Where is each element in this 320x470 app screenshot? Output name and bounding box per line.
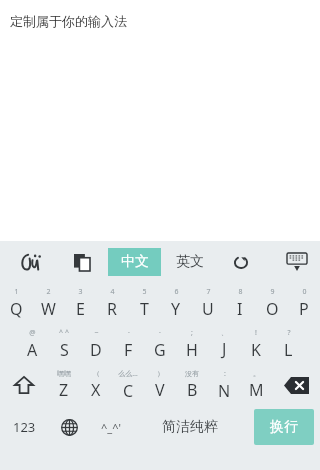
staticText: N — [218, 380, 231, 402]
staticText: 2 — [46, 287, 51, 297]
button[interactable]: Shift — [0, 366, 48, 404]
staticText: Y — [171, 298, 181, 320]
staticText: 换行 — [270, 418, 298, 436]
button[interactable]: 1 — [0, 284, 32, 322]
staticText: 3 — [78, 287, 83, 297]
button[interactable]: Clipboard — [63, 244, 101, 280]
button[interactable]: 。 — [240, 366, 272, 404]
staticText: 123 — [13, 418, 36, 436]
button[interactable]: 英文 — [165, 248, 215, 276]
staticText: G — [154, 339, 166, 361]
button[interactable]: ? — [272, 325, 304, 363]
button[interactable]: 0 — [288, 284, 320, 322]
staticText: V — [155, 379, 165, 401]
staticText: 6 — [174, 287, 179, 297]
button[interactable]: @ — [16, 325, 48, 363]
staticText: @ — [29, 328, 36, 338]
staticText: 定制属于你的输入法 — [10, 13, 127, 29]
button[interactable]: 6 — [160, 284, 192, 322]
button[interactable]: 中文 — [108, 248, 161, 276]
staticText: T — [140, 298, 149, 320]
staticText: 1 — [14, 287, 19, 297]
staticText: 么么… — [118, 369, 138, 379]
button[interactable]: Switch language — [49, 407, 90, 447]
staticText: · — [159, 328, 161, 338]
button[interactable]: : — [208, 366, 240, 404]
staticText: Q — [10, 298, 23, 320]
staticText: ! — [255, 328, 257, 338]
button[interactable]: 8 — [224, 284, 256, 322]
button[interactable]: ） — [144, 366, 176, 404]
staticText: X — [91, 379, 101, 401]
staticText: 没有 — [185, 369, 199, 378]
staticText: 7 — [206, 287, 211, 297]
staticText: Z — [59, 379, 69, 401]
staticText: C — [123, 380, 134, 402]
staticText: : — [224, 369, 226, 379]
button[interactable]: 2 — [32, 284, 64, 322]
staticText: S — [60, 339, 69, 361]
staticText: 9 — [270, 287, 275, 297]
button[interactable]: 没有 — [176, 366, 208, 404]
staticText: 5 — [142, 287, 147, 297]
button[interactable]: 123 — [0, 407, 49, 447]
button[interactable]: · — [112, 325, 144, 363]
button[interactable]: 换行 — [254, 409, 314, 445]
staticText: 简洁纯粹 — [162, 418, 218, 436]
button[interactable]: 嘿嘿 — [48, 366, 80, 404]
staticText: ~ — [94, 328, 99, 338]
button[interactable]: Emoticon — [90, 407, 131, 447]
button[interactable]: Backspace — [272, 366, 320, 404]
staticText: 英文 — [176, 253, 204, 271]
staticText: M — [249, 379, 264, 401]
staticText: 4 — [110, 287, 115, 297]
staticText: D — [90, 339, 102, 361]
staticText: 、 — [221, 328, 228, 337]
staticText: O — [266, 298, 279, 320]
button[interactable]: ; — [176, 325, 208, 363]
button[interactable]: ~ — [80, 325, 112, 363]
staticText: F — [124, 339, 133, 361]
staticText: 。 — [253, 369, 260, 378]
button[interactable]: · — [144, 325, 176, 363]
staticText: 8 — [238, 287, 243, 297]
staticText: A — [27, 339, 38, 361]
staticText: U — [202, 298, 214, 320]
staticText: ） — [157, 369, 164, 378]
button[interactable]: 5 — [128, 284, 160, 322]
button[interactable]: 、 — [208, 325, 240, 363]
button[interactable]: Hide keyboard — [277, 244, 317, 280]
staticText: K — [251, 339, 261, 361]
staticText: · — [128, 328, 130, 338]
staticText: 0 — [302, 287, 307, 297]
staticText: ^ ^ — [59, 328, 69, 338]
button[interactable]: 7 — [192, 284, 224, 322]
button[interactable]: （ — [80, 366, 112, 404]
button[interactable]: 简洁纯粹 — [131, 407, 248, 447]
staticText: B — [187, 379, 198, 401]
button[interactable]: ! — [240, 325, 272, 363]
staticText: J — [222, 338, 227, 360]
button[interactable]: ^ ^ — [48, 325, 80, 363]
staticText: R — [107, 298, 117, 320]
button[interactable]: Undo — [222, 244, 260, 280]
staticText: （ — [93, 369, 100, 378]
button[interactable]: 9 — [256, 284, 288, 322]
staticText: H — [186, 339, 198, 361]
staticText: 嘿嘿 — [57, 369, 71, 378]
button[interactable]: Handwriting input — [12, 244, 52, 280]
staticText: 中文 — [121, 253, 149, 271]
staticText: ? — [287, 328, 291, 338]
button[interactable]: 么么… — [112, 366, 144, 404]
button[interactable]: 3 — [64, 284, 96, 322]
staticText: ^_^' — [101, 420, 121, 435]
staticText: ; — [191, 328, 193, 338]
staticText: E — [76, 298, 85, 320]
staticText: L — [284, 339, 293, 361]
staticText: I — [237, 298, 243, 320]
staticText: W — [41, 298, 56, 320]
button[interactable]: 4 — [96, 284, 128, 322]
staticText: P — [299, 298, 309, 320]
